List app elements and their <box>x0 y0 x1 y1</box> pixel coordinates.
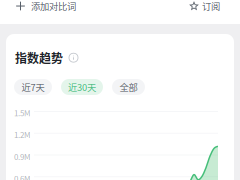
button[interactable]: 全部 <box>112 79 145 95</box>
button[interactable]: 近7天 <box>14 79 52 95</box>
staticText: 近7天 <box>21 80 44 94</box>
staticText: 全部 <box>119 80 137 94</box>
staticText: 近30天 <box>68 80 96 94</box>
staticText: 1.2M <box>14 129 30 140</box>
button[interactable]: 添加对比词 <box>0 0 86 12</box>
button[interactable]: 订阅 <box>180 0 240 12</box>
staticText: 添加对比词 <box>31 0 76 13</box>
staticText: 0.6M <box>14 172 30 180</box>
staticText: 0.9M <box>14 151 30 162</box>
staticText: 1.5M <box>14 107 30 119</box>
button[interactable]: 近30天 <box>61 79 103 95</box>
staticText: 订阅 <box>202 0 220 13</box>
staticText: 指数趋势 <box>15 49 63 66</box>
